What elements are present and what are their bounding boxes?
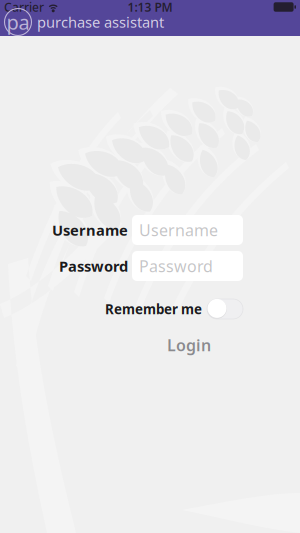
button[interactable]: Remember me: [207, 299, 243, 319]
button[interactable]: Login: [153, 333, 225, 357]
staticText: Username: [139, 219, 218, 241]
staticText: purchase assistant: [37, 12, 164, 32]
staticText: Password: [139, 255, 213, 277]
staticText: Password: [59, 256, 128, 276]
staticText: Username: [52, 220, 128, 240]
staticText: Remember me: [105, 300, 202, 318]
staticText: Login: [167, 334, 211, 356]
staticText: 1:13 PM: [127, 0, 172, 15]
staticText: Carrier: [4, 0, 44, 15]
staticText: pa: [6, 9, 29, 35]
